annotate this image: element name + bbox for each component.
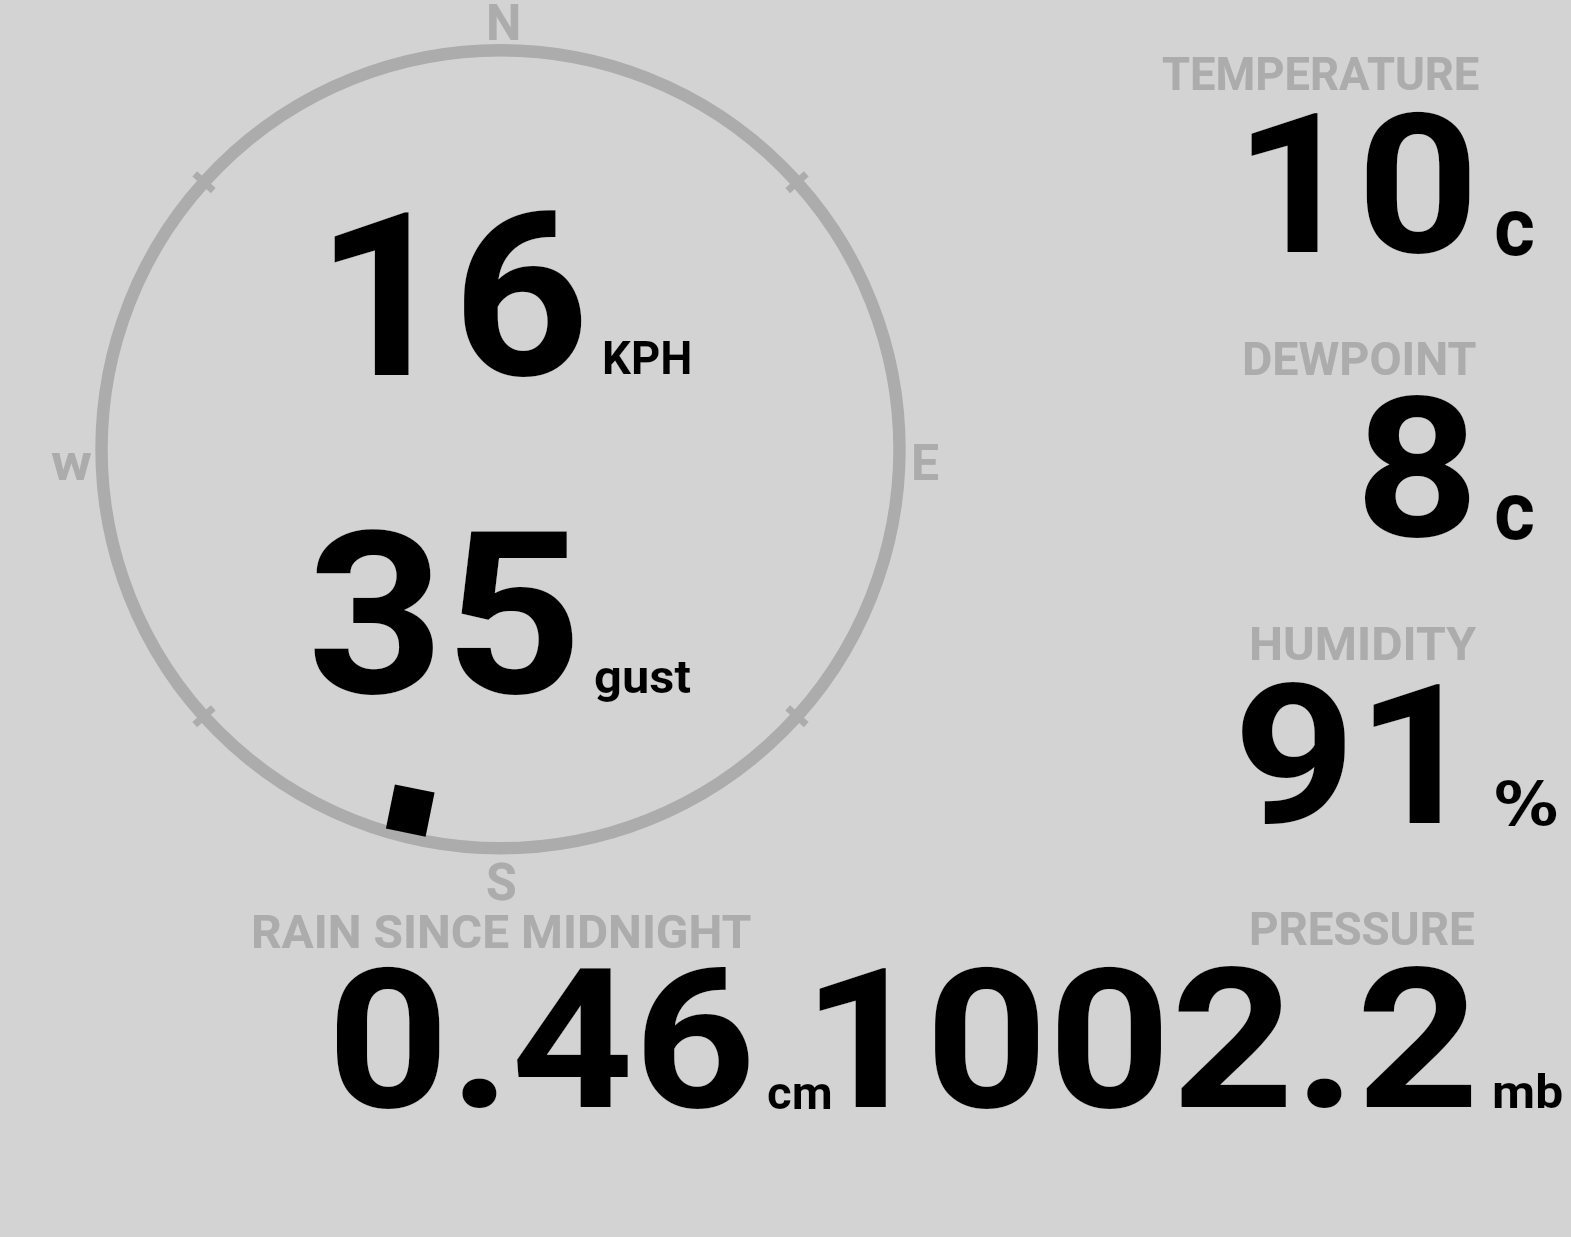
staticText: HUMIDITY	[1249, 617, 1476, 671]
button[interactable]: Dewpoint 8 degrees Celsius	[1000, 315, 1560, 555]
button[interactable]: Rain since midnight 0.46 centimetres	[230, 900, 850, 1120]
button[interactable]: Temperature 10 degrees Celsius	[1000, 30, 1560, 270]
staticText: KPH	[602, 331, 693, 385]
staticText: c	[1494, 179, 1535, 275]
staticText: N	[486, 0, 522, 53]
staticText: 8	[1355, 356, 1480, 583]
staticText: gust	[594, 650, 692, 704]
staticText: 91	[1233, 643, 1479, 870]
button[interactable]: Pressure 1002.2 millibars	[850, 900, 1560, 1120]
staticText: DEWPOINT	[1242, 332, 1477, 386]
staticText: TEMPERATURE	[1162, 47, 1480, 101]
staticText: 10	[1234, 72, 1480, 299]
staticText: c	[1494, 463, 1535, 559]
button[interactable]: Humidity 91 percent	[1000, 600, 1560, 840]
staticText: %	[1494, 768, 1559, 839]
staticText: mb	[1492, 1065, 1563, 1119]
staticText: E	[911, 434, 940, 493]
staticText: 1002.2	[802, 927, 1479, 1154]
staticText: S	[486, 852, 517, 913]
staticText: PRESSURE	[1249, 902, 1475, 956]
staticText: w	[51, 431, 92, 493]
staticText: cm	[767, 1066, 833, 1120]
staticText: 0.46	[327, 927, 757, 1154]
staticText: 16	[315, 163, 590, 431]
button[interactable]: Wind direction and speed dial	[60, 0, 960, 905]
staticText: 35	[307, 483, 583, 748]
staticText: RAIN SINCE MIDNIGHT	[251, 905, 751, 959]
